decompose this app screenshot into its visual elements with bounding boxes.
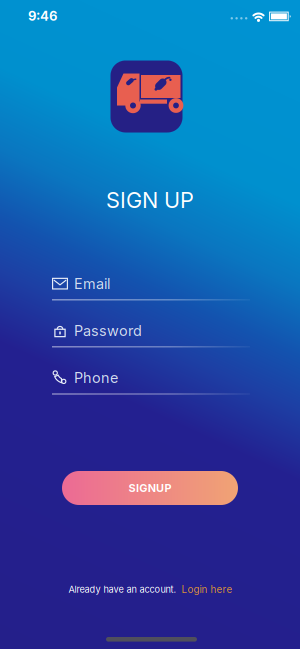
staticText: SIGN UP bbox=[106, 187, 194, 213]
staticText: SIGNUP bbox=[128, 481, 171, 495]
staticText: Already have an account. bbox=[68, 584, 176, 595]
staticText: Phone bbox=[74, 369, 118, 386]
button[interactable]: SIGNUP bbox=[62, 471, 238, 505]
staticText: Password bbox=[74, 322, 142, 339]
button[interactable]: Phone bbox=[52, 362, 250, 395]
button[interactable]: Email bbox=[52, 268, 250, 300]
staticText: Login here bbox=[181, 584, 232, 595]
button[interactable]: Password bbox=[52, 315, 250, 347]
staticText: 9:46 bbox=[28, 8, 57, 24]
button[interactable]: Login here bbox=[181, 584, 232, 595]
staticText: Email bbox=[74, 275, 110, 292]
